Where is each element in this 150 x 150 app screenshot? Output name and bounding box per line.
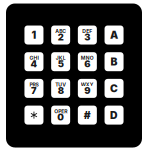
staticText: OPER <box>54 108 67 114</box>
button[interactable]: 0 <box>51 106 70 125</box>
button[interactable]: 2 <box>51 25 70 44</box>
staticText: 5 <box>58 58 64 69</box>
staticText: # <box>84 109 91 121</box>
button[interactable]: C <box>104 79 123 98</box>
button[interactable]: Star <box>24 106 43 125</box>
staticText: ABC <box>55 28 66 34</box>
staticText: WXY <box>81 81 94 88</box>
staticText: 6 <box>84 58 90 69</box>
staticText: D <box>110 109 118 121</box>
staticText: GHI <box>29 55 38 61</box>
button[interactable]: 6 <box>78 52 97 71</box>
staticText: 3 <box>84 31 90 43</box>
staticText: PRS <box>29 81 38 88</box>
staticText: DEF <box>82 28 92 34</box>
staticText: 1 <box>31 29 36 41</box>
staticText: MNO <box>81 55 94 61</box>
button[interactable]: 4 <box>24 52 43 71</box>
staticText: C <box>110 82 118 95</box>
staticText: 7 <box>31 85 37 96</box>
staticText: 9 <box>84 85 90 96</box>
button[interactable]: D <box>104 106 123 125</box>
button[interactable]: 1 <box>24 25 43 44</box>
button[interactable]: 5 <box>51 52 70 71</box>
button[interactable]: 3 <box>78 25 97 44</box>
staticText: 8 <box>58 85 64 96</box>
button[interactable]: 7 <box>24 79 43 98</box>
button[interactable]: A <box>104 25 123 44</box>
staticText: 0 <box>57 112 64 123</box>
staticText: 2 <box>58 31 64 43</box>
button[interactable]: 8 <box>51 79 70 98</box>
staticText: A <box>110 29 118 41</box>
staticText: 4 <box>30 58 37 69</box>
button[interactable]: 9 <box>78 79 97 98</box>
staticText: JKL <box>56 55 66 61</box>
button[interactable]: B <box>104 52 123 71</box>
staticText: TUV <box>55 81 66 88</box>
button[interactable]: Pound <box>78 106 97 125</box>
staticText: B <box>110 55 117 68</box>
